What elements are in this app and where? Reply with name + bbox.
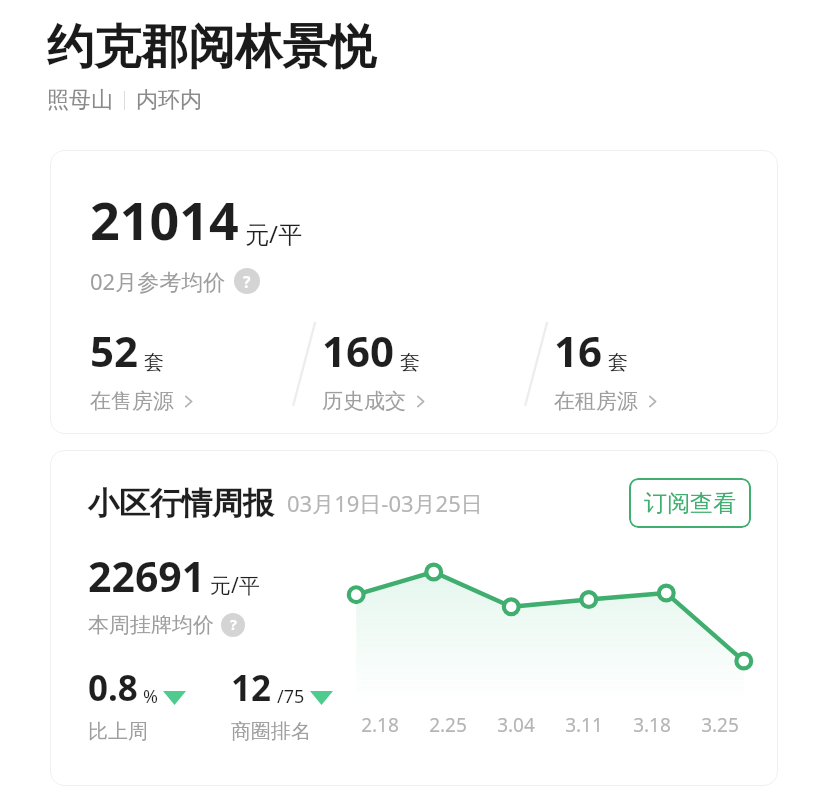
staticText: 3.11 [550,712,618,738]
button[interactable]: 02月参考均价 [90,266,260,296]
staticText: % [143,684,158,709]
staticText: 21014 [90,184,239,255]
staticText: 160 [322,322,395,379]
staticText: 历史成交 [322,388,406,414]
staticText: 3.04 [482,712,550,738]
staticText: 2.25 [414,712,482,738]
staticText: ? [243,271,251,292]
staticText: 套 [608,350,628,375]
staticText: 订阅查看 [644,489,736,518]
staticText: /75 [277,684,305,709]
button[interactable]: 本周挂牌均价 [88,612,245,638]
staticText: 商圈排名 [231,719,311,744]
staticText: 约克郡阅林景悦 [47,18,376,77]
staticText: 本周挂牌均价 [88,612,214,638]
staticText: 03月19日-03月25日 [287,488,483,518]
staticText: 元/平 [245,217,302,250]
staticText: 小区行情周报 [88,484,274,523]
staticText: 元/平 [210,571,260,600]
button[interactable]: 16 [554,322,752,414]
staticText: 3.25 [686,712,754,738]
staticText: 套 [400,350,420,375]
button[interactable]: 52 [90,322,288,414]
staticText: 12 [231,664,272,712]
button[interactable]: 订阅查看 [629,478,751,528]
staticText: 22691 [88,548,206,604]
staticText: 0.8 [88,664,138,712]
staticText: 52 [90,322,139,379]
staticText: ? [230,615,237,635]
staticText: 比上周 [88,719,148,744]
staticText: 内环内 [136,86,202,114]
staticText: 照母山 [47,86,113,114]
button[interactable]: 160 [322,322,520,414]
staticText: 2.18 [346,712,414,738]
staticText: 16 [554,322,603,379]
staticText: 在售房源 [90,388,174,414]
staticText: 在租房源 [554,388,638,414]
staticText: 3.18 [618,712,686,738]
staticText: 02月参考均价 [90,266,226,296]
staticText: 套 [144,350,164,375]
